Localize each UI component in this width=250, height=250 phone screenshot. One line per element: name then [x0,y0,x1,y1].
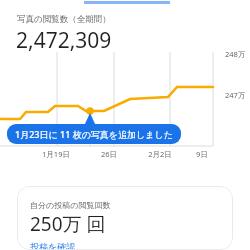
staticText: 250万 回 [30,211,106,237]
button[interactable]: 1月23日に 11 枚の写真を追加しました [7,124,181,144]
staticText: 1月23日に 11 枚の写真を追加しました [15,128,173,140]
staticText: 1月19日 [36,149,76,159]
button[interactable]: 自分の投稿の閲覧回数 [17,186,233,250]
staticText: 9日 [188,149,216,159]
staticText: 写真の閲覧数（全期間） [17,14,111,25]
staticText: 2月2日 [142,149,178,159]
staticText: 2,472,309 [16,26,112,55]
staticText: 247万 [225,90,246,100]
staticText: 248万 [225,49,246,59]
staticText: 26日 [93,149,125,159]
staticText: 自分の投稿の閲覧回数 [30,200,111,210]
button[interactable]: 投稿を確認 [30,241,76,250]
